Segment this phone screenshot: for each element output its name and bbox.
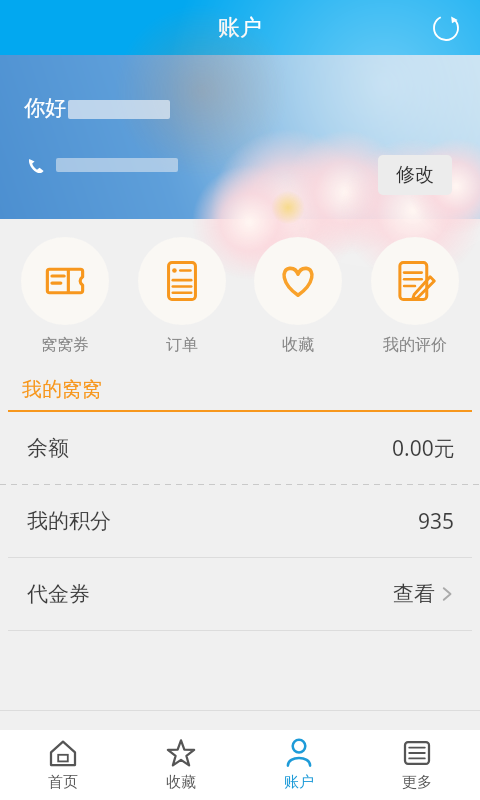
staticText: 我的评价 <box>383 335 447 355</box>
button[interactable]: 修改 <box>378 155 452 195</box>
button[interactable]: 我的积分 <box>0 485 480 557</box>
staticText: 首页 <box>48 773 78 792</box>
staticText: 账户 <box>218 14 262 42</box>
staticText: 更多 <box>402 773 432 792</box>
button[interactable]: 余额 <box>0 412 480 484</box>
button[interactable]: 首页 <box>8 730 118 800</box>
staticText: 代金券 <box>27 581 90 607</box>
button[interactable]: 窝窝券 <box>13 237 117 355</box>
staticText: 我的窝窝 <box>22 377 102 402</box>
staticText: 你好 <box>24 95 66 121</box>
button[interactable]: 更多 <box>362 730 472 800</box>
staticText: 收藏 <box>166 773 196 792</box>
staticText: 0.00元 <box>392 434 455 463</box>
staticText: 935 <box>418 507 455 536</box>
staticText: 查看 <box>393 581 435 607</box>
staticText: 余额 <box>27 435 69 461</box>
button[interactable]: 订单 <box>130 237 234 355</box>
staticText: 账户 <box>284 773 314 792</box>
staticText: 窝窝券 <box>41 335 89 355</box>
staticText: 修改 <box>396 163 434 187</box>
button[interactable]: 我的评价 <box>363 237 467 355</box>
button[interactable]: 代金券 <box>0 558 480 630</box>
staticText: 我的积分 <box>27 508 111 534</box>
staticText: 收藏 <box>282 335 314 355</box>
button[interactable]: Refresh <box>426 8 466 48</box>
button[interactable]: 收藏 <box>246 237 350 355</box>
button[interactable]: 账户 <box>244 730 354 800</box>
button[interactable]: 收藏 <box>126 730 236 800</box>
staticText: 订单 <box>166 335 198 355</box>
